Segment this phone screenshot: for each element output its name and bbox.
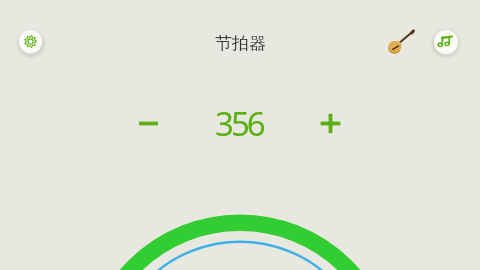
button[interactable]: Settings — [19, 30, 42, 53]
button[interactable]: Instrument — [384, 26, 416, 58]
button[interactable]: Sound settings — [434, 30, 458, 54]
button[interactable]: Decrease tempo — [128, 103, 169, 144]
staticText: 356 — [215, 101, 263, 146]
staticText: 节拍器 — [215, 33, 266, 54]
button[interactable]: Increase tempo — [310, 103, 351, 144]
